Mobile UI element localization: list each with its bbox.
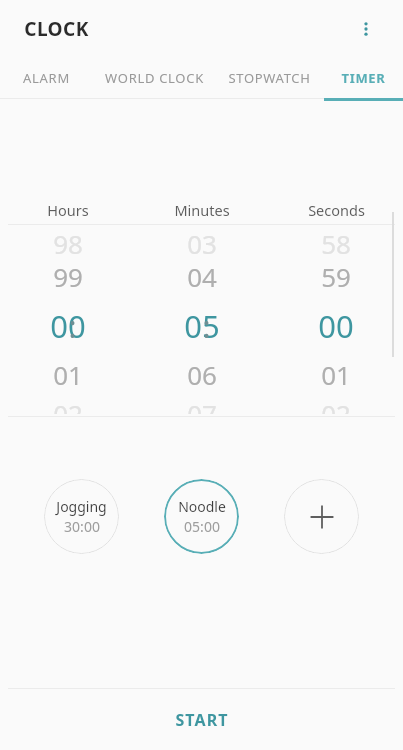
staticText: 01 <box>53 357 83 392</box>
staticText: TIMER <box>341 69 386 87</box>
button[interactable]: More options <box>349 12 383 46</box>
staticText: Seconds <box>308 200 365 220</box>
staticText: 00 <box>50 305 86 347</box>
staticText: Jogging <box>56 497 107 516</box>
button[interactable]: WORLD CLOCK <box>93 57 215 98</box>
staticText: 99 <box>53 259 83 294</box>
button[interactable]: ALARM <box>0 57 93 98</box>
staticText: Hours <box>47 200 89 220</box>
staticText: 00 <box>318 305 354 347</box>
staticText: : <box>202 306 211 347</box>
staticText: CLOCK <box>24 16 89 42</box>
button[interactable]: Seconds <box>269 200 403 417</box>
staticText: 03 <box>187 226 217 255</box>
staticText: 04 <box>187 259 217 294</box>
button[interactable]: Minutes <box>135 200 269 417</box>
button[interactable]: Add preset timer <box>284 479 359 554</box>
staticText: ALARM <box>23 69 70 87</box>
staticText: WORLD CLOCK <box>105 69 204 87</box>
staticText: Minutes <box>174 200 230 220</box>
button[interactable]: Hours <box>0 200 135 417</box>
staticText: 02 <box>53 396 83 414</box>
staticText: 05 <box>184 305 220 347</box>
staticText: STOPWATCH <box>228 69 311 87</box>
staticText: 30:00 <box>64 517 100 536</box>
staticText: 06 <box>187 357 217 392</box>
staticText: 01 <box>321 357 351 392</box>
staticText: 59 <box>321 259 351 294</box>
staticText: 02 <box>321 396 351 414</box>
button[interactable]: TIMER <box>324 57 403 98</box>
staticText: 05:00 <box>184 517 220 536</box>
button[interactable]: STOPWATCH <box>215 57 324 98</box>
staticText: START <box>175 709 229 731</box>
staticText: 07 <box>187 396 217 414</box>
staticText: : <box>68 306 77 347</box>
button[interactable]: Noodle <box>164 479 239 554</box>
button[interactable]: START <box>0 689 403 750</box>
button[interactable]: Jogging <box>44 479 119 554</box>
staticText: 98 <box>53 226 83 255</box>
staticText: Noodle <box>178 497 226 516</box>
staticText: 58 <box>321 226 351 255</box>
